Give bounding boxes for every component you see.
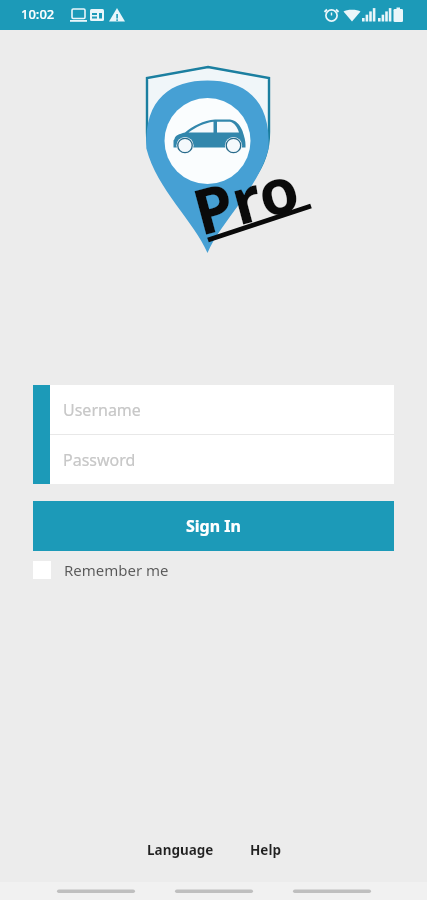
staticText: Pro — [184, 144, 308, 254]
staticText: Help — [250, 841, 281, 859]
staticText: Username — [63, 399, 141, 421]
button[interactable]: Remember me — [33, 560, 169, 580]
staticText: Language — [147, 841, 214, 859]
button[interactable]: Sign In — [33, 501, 394, 551]
staticText: Sign In — [186, 515, 241, 537]
button[interactable]: Language — [139, 837, 222, 863]
button[interactable]: Help — [242, 837, 289, 863]
staticText: 10:02 — [21, 5, 55, 23]
staticText: Password — [63, 449, 136, 471]
staticText: Remember me — [64, 560, 169, 580]
